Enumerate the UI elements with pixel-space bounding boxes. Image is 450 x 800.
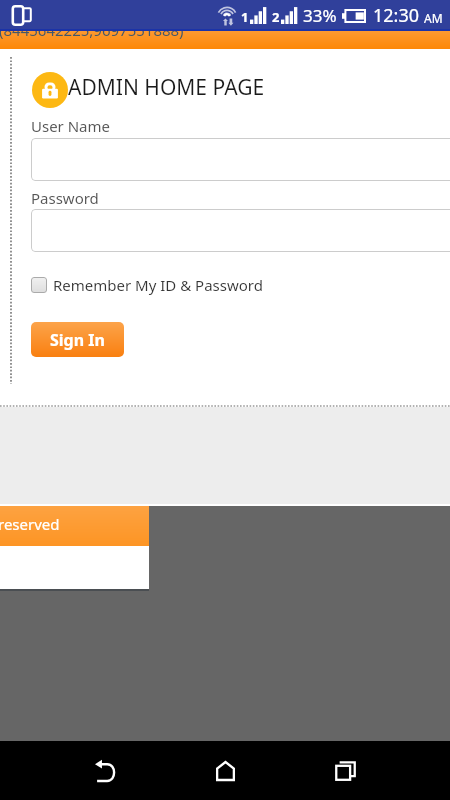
staticText: Sign In — [50, 329, 105, 351]
staticText: ADMIN HOME PAGE — [68, 73, 265, 102]
staticText: 12:30 — [373, 3, 420, 28]
staticText: 2 — [272, 8, 280, 26]
button[interactable]: Remember My ID & Password — [31, 275, 263, 295]
staticText: (8445642225,9697551888) — [0, 20, 184, 39]
button[interactable]: Home — [195, 741, 255, 800]
staticText: User Name — [31, 116, 111, 136]
staticText: Remember My ID & Password — [53, 275, 263, 295]
button[interactable]: Admin lock — [32, 72, 68, 108]
other: Tabs — [11, 5, 31, 26]
staticText: Password — [31, 188, 99, 208]
button[interactable]: Recents — [315, 741, 375, 800]
button[interactable] — [31, 138, 450, 181]
button[interactable]: Back — [75, 741, 135, 800]
button[interactable] — [31, 209, 450, 252]
staticText: 1 — [241, 8, 249, 26]
staticText: 33% — [303, 4, 337, 27]
staticText: reserved — [0, 514, 60, 534]
button[interactable]: Sign In — [31, 322, 124, 357]
staticText: AM — [424, 10, 443, 26]
